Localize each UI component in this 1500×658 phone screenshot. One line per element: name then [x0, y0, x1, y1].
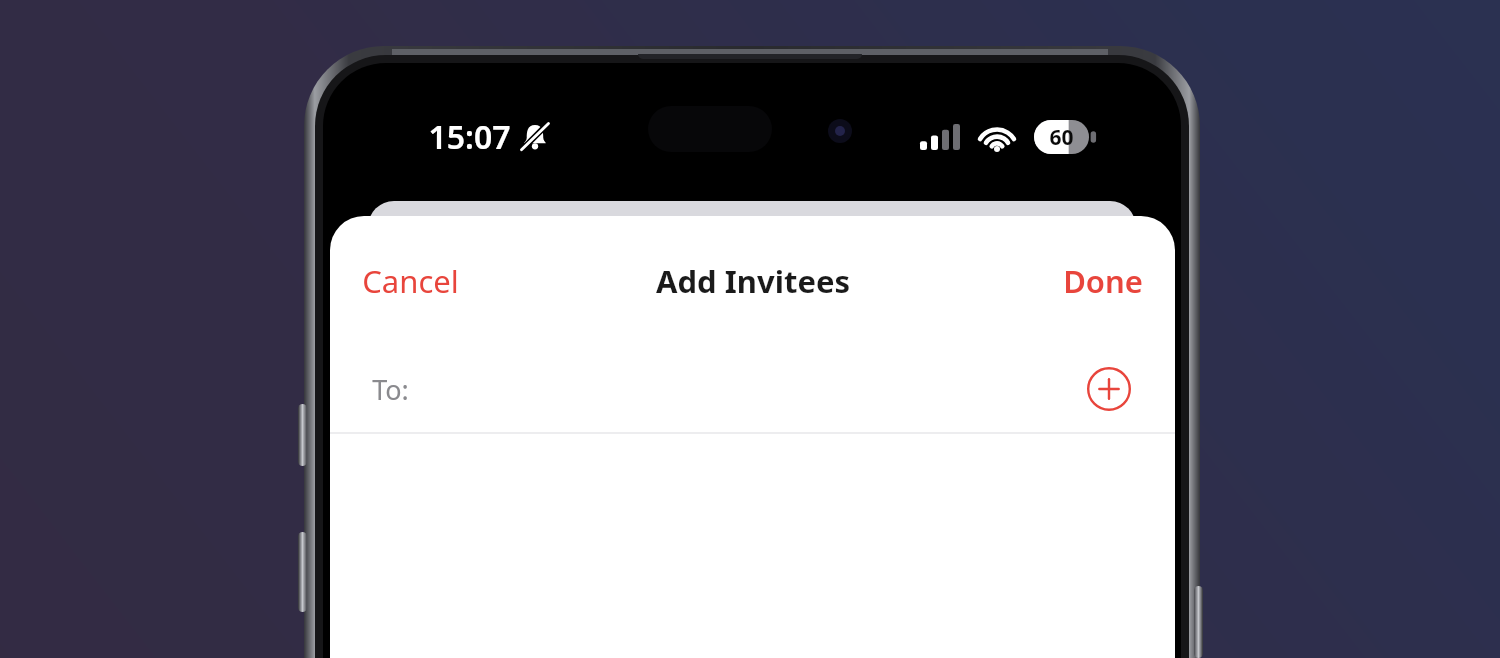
- staticText: To:: [372, 371, 409, 408]
- button[interactable]: Add contact: [1081, 361, 1137, 417]
- staticText: 15:07: [428, 115, 511, 157]
- staticText: Done: [1063, 260, 1143, 302]
- button[interactable]: To:: [330, 346, 1175, 432]
- staticText: 60: [1049, 123, 1074, 152]
- button[interactable]: Cancel: [354, 255, 467, 307]
- staticText: Add Invitees: [656, 260, 850, 302]
- staticText: Cancel: [362, 260, 459, 302]
- button[interactable]: Done: [1055, 255, 1151, 307]
